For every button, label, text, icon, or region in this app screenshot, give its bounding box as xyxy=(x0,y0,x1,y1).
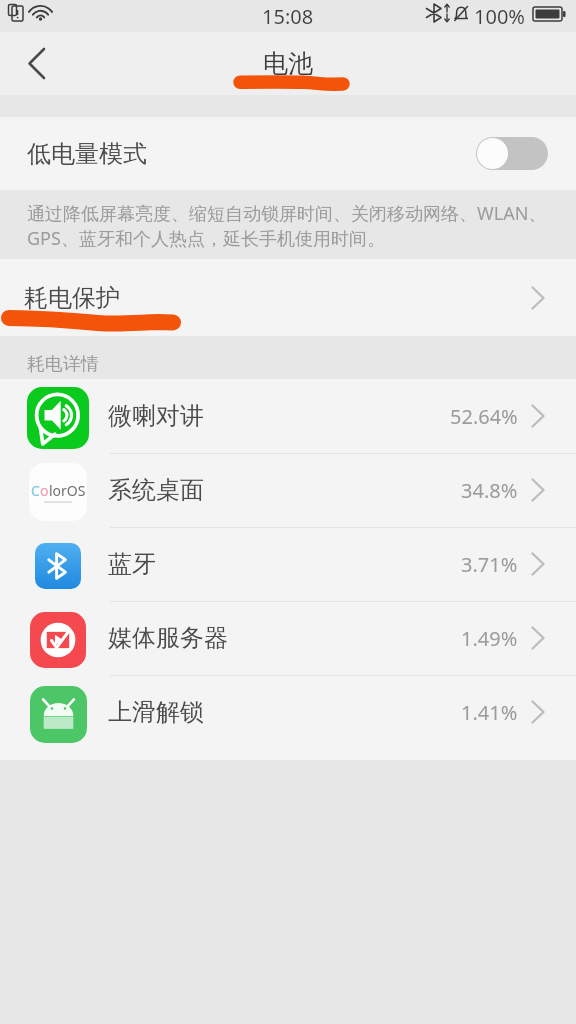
button[interactable]: 低电量模式开关 xyxy=(476,137,548,170)
button[interactable]: 微喇对讲 xyxy=(0,379,576,453)
staticText: 通过降低屏幕亮度、缩短自动锁屏时间、关闭移动网络、WLAN、 GPS、蓝牙和个人… xyxy=(27,201,547,250)
staticText: 微喇对讲 xyxy=(108,401,204,431)
staticText: 低电量模式 xyxy=(27,139,147,169)
button[interactable]: 低电量模式 xyxy=(0,117,576,190)
staticText: C xyxy=(31,481,40,500)
staticText: 52.64% xyxy=(450,403,518,430)
staticText: 系统桌面 xyxy=(108,475,204,505)
staticText: 15:08 xyxy=(262,3,314,30)
staticText: 34.8% xyxy=(461,477,518,504)
staticText: 1.49% xyxy=(461,625,518,652)
staticText: 100% xyxy=(474,3,525,30)
staticText: 耗电保护 xyxy=(24,283,120,313)
button[interactable]: 媒体服务器 xyxy=(0,601,576,675)
button[interactable]: C xyxy=(0,453,576,527)
button[interactable]: 蓝牙 xyxy=(0,527,576,601)
staticText: 1.41% xyxy=(461,699,518,726)
staticText: 3.71% xyxy=(461,551,518,578)
staticText: o xyxy=(40,481,49,500)
button[interactable]: 耗电保护 xyxy=(0,259,576,336)
staticText: lorOS xyxy=(49,481,86,500)
staticText: 耗电详情 xyxy=(27,353,99,376)
staticText: 媒体服务器 xyxy=(108,623,228,653)
button[interactable]: 返回 xyxy=(0,32,72,95)
staticText: 电池 xyxy=(263,48,313,79)
staticText: 上滑解锁 xyxy=(108,697,204,727)
button[interactable]: 上滑解锁 xyxy=(0,675,576,760)
staticText: 蓝牙 xyxy=(108,549,156,579)
